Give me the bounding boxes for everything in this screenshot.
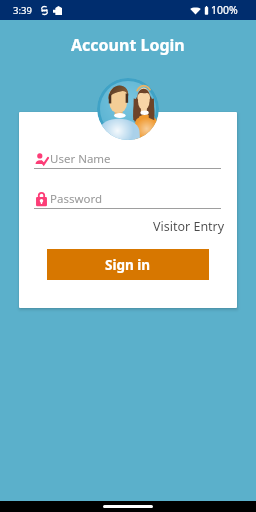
staticText: User Name [50,151,111,167]
button[interactable]: Home [103,505,153,508]
staticText: 3:39 [13,4,32,17]
staticText: Visitor Entry [153,218,225,235]
staticText: Sign in [105,256,151,274]
staticText: Account Login [71,34,185,56]
button[interactable]: Sign in [47,249,209,280]
staticText: Password [50,191,103,207]
staticText: 100% [211,3,238,17]
other: Profile avatar [97,78,159,140]
button[interactable]: Password [19,186,237,214]
button[interactable]: Visitor Entry [139,214,237,239]
button[interactable]: User Name [19,146,237,174]
